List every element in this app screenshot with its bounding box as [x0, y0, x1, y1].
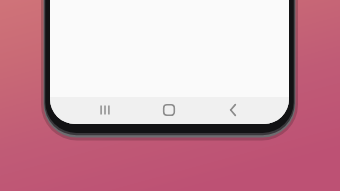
button[interactable]: Back — [210, 98, 256, 122]
button[interactable]: Recent apps — [82, 98, 128, 122]
button[interactable]: Home — [146, 98, 192, 122]
